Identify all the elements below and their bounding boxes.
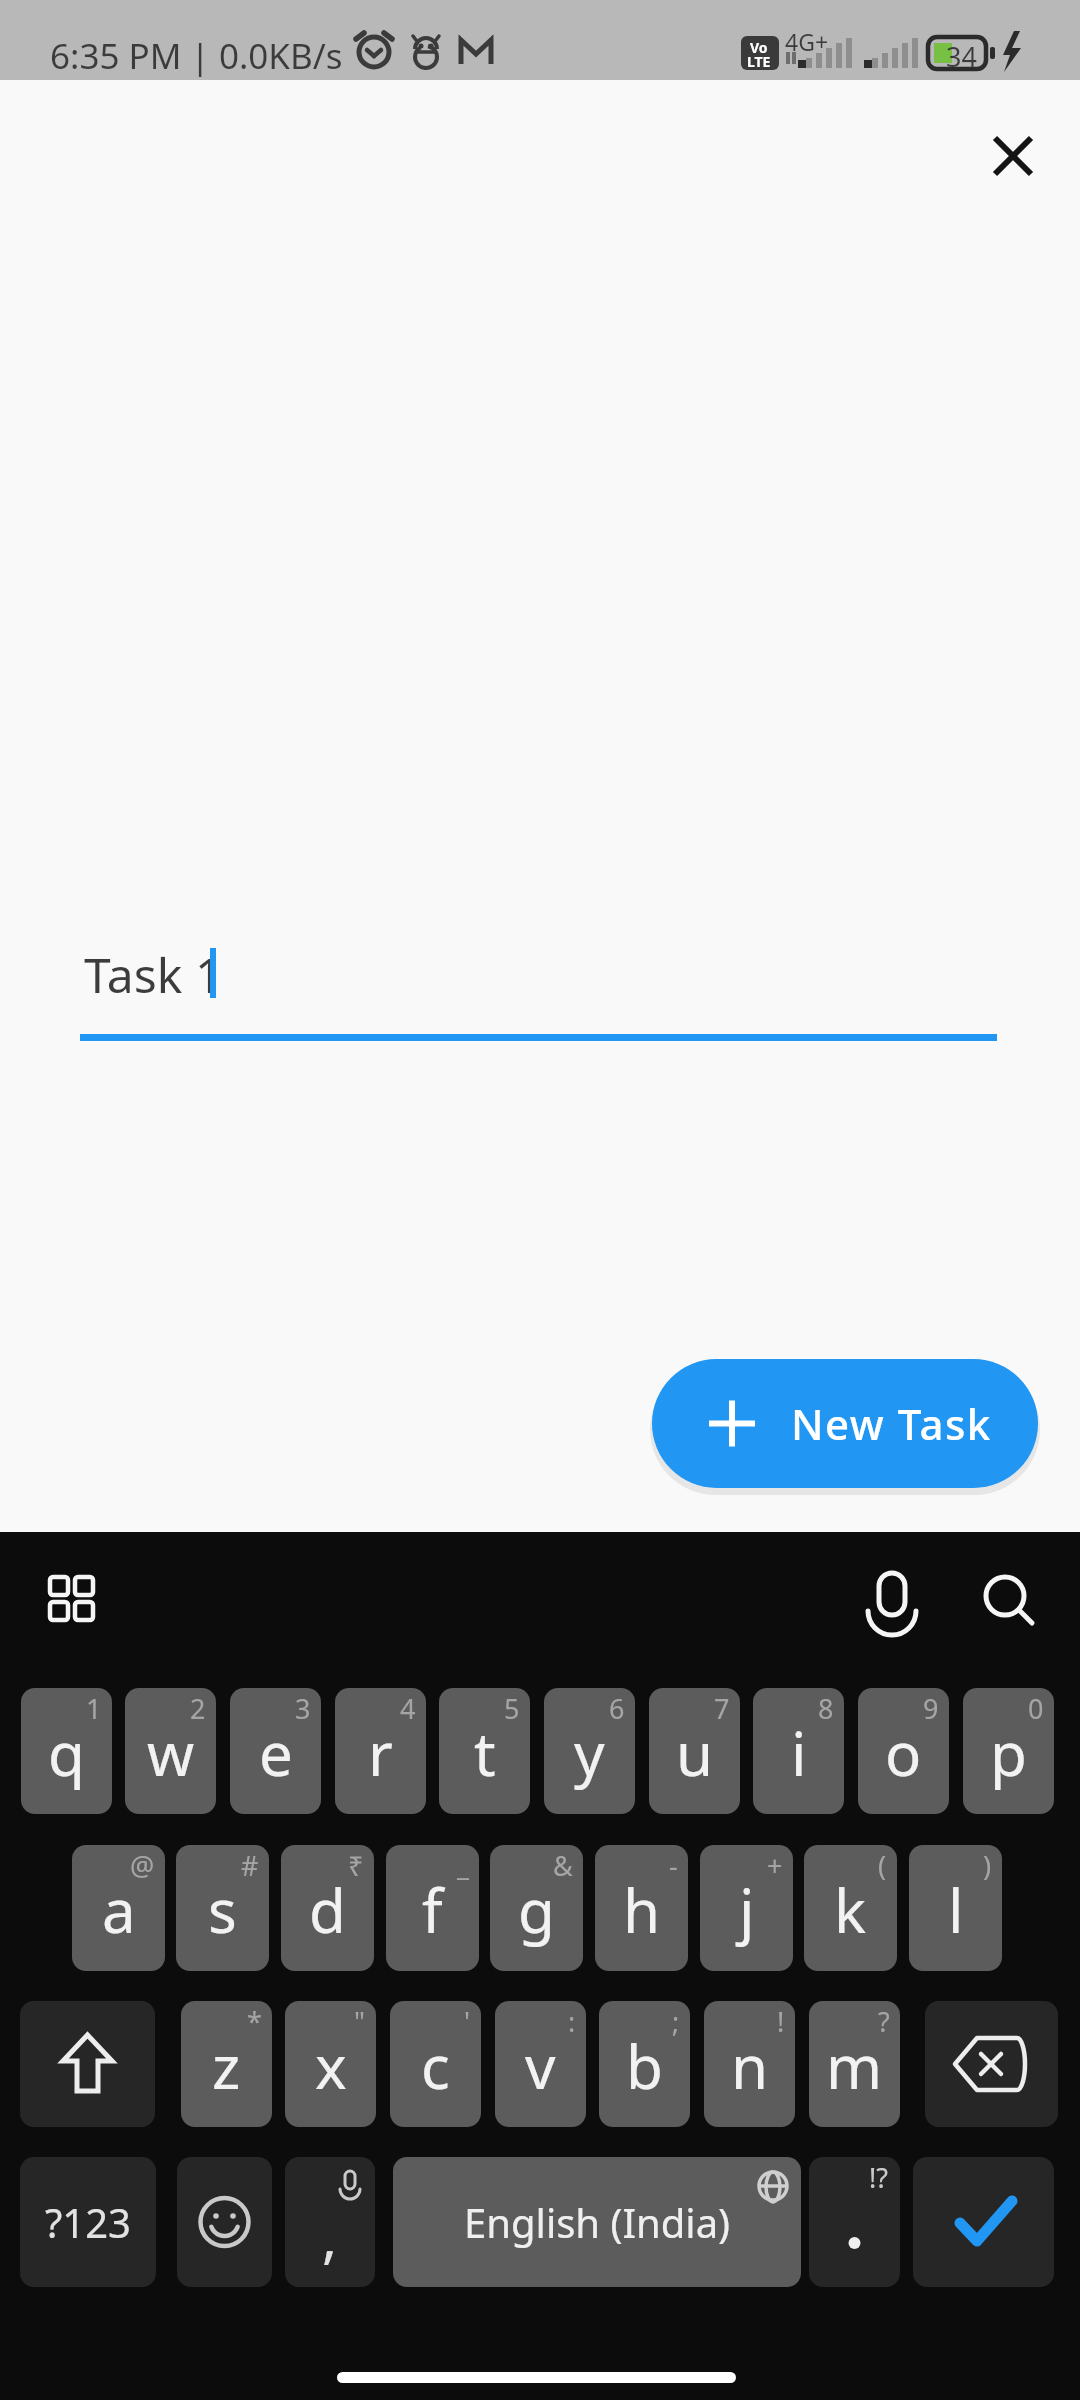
staticText: g [518, 1869, 555, 1951]
staticText: 3 [295, 1690, 311, 1727]
staticText: Task 1 [84, 942, 223, 1007]
staticText: - [669, 1847, 678, 1884]
button[interactable]: 9 [858, 1688, 949, 1814]
staticText: _ [457, 1847, 469, 1884]
button[interactable]: ₹ [281, 1845, 374, 1971]
staticText: s [208, 1869, 237, 1951]
staticText: ' [464, 2003, 471, 2040]
staticText: English (India) [464, 2195, 731, 2249]
staticText: , [322, 2198, 338, 2274]
staticText: m [826, 2025, 883, 2107]
button[interactable]: 5 [439, 1688, 530, 1814]
staticText: z [212, 2025, 241, 2107]
staticText: 9 [923, 1690, 939, 1727]
staticText: n [731, 2025, 769, 2107]
staticText: e [259, 1712, 293, 1794]
button[interactable]: , [285, 2157, 375, 2287]
staticText: t [474, 1712, 496, 1794]
staticText: : [568, 2003, 576, 2040]
staticText: a [102, 1869, 136, 1951]
button[interactable] [177, 2157, 272, 2287]
staticText: & [553, 1847, 573, 1884]
staticText: ; [672, 2003, 680, 2040]
staticText: k [834, 1869, 867, 1951]
button[interactable] [913, 2157, 1054, 2287]
button[interactable]: # [176, 1845, 269, 1971]
staticText: 4G+ [785, 26, 829, 57]
staticText: # [241, 1847, 259, 1884]
button[interactable]: 0 [963, 1688, 1054, 1814]
button[interactable]: 8 [753, 1688, 844, 1814]
staticText: h [623, 1869, 661, 1951]
staticText: 34 [946, 38, 977, 75]
button[interactable]: - [595, 1845, 688, 1971]
staticText: j [739, 1869, 755, 1951]
staticText: !? [869, 2159, 888, 2196]
button[interactable]: !? [809, 2157, 900, 2287]
staticText: ₹ [348, 1847, 364, 1884]
staticText: q [48, 1712, 85, 1794]
staticText: 7 [714, 1690, 730, 1727]
staticText: 5 [504, 1690, 520, 1727]
button[interactable]: ( [804, 1845, 897, 1971]
staticText: ?123 [45, 2195, 131, 2249]
button[interactable]: ? [809, 2001, 900, 2127]
staticText: u [676, 1712, 714, 1794]
staticText: 2 [190, 1690, 206, 1727]
staticText: ( [878, 1847, 887, 1884]
staticText: Vo [750, 38, 768, 57]
staticText: x [315, 2025, 347, 2107]
button[interactable]: English (India) [393, 2157, 801, 2287]
staticText: ! [777, 2003, 785, 2040]
button[interactable] [925, 2001, 1058, 2127]
staticText: r [368, 1712, 393, 1794]
button[interactable] [850, 1557, 935, 1637]
staticText: 8 [818, 1690, 834, 1727]
staticText: d [309, 1869, 346, 1951]
button[interactable]: @ [72, 1845, 165, 1971]
staticText: ? [878, 2003, 890, 2040]
button[interactable]: + [700, 1845, 793, 1971]
button[interactable]: : [495, 2001, 586, 2127]
staticText: y [574, 1712, 605, 1794]
staticText: LTE [747, 52, 771, 71]
button[interactable]: 6 [544, 1688, 635, 1814]
button[interactable]: * [181, 2001, 272, 2127]
button[interactable]: ! [704, 2001, 795, 2127]
staticText: 6:35 PM | 0.0KB/s [50, 32, 343, 80]
staticText: b [626, 2025, 663, 2107]
staticText: 0 [1028, 1690, 1044, 1727]
staticText: 1 [86, 1690, 102, 1727]
staticText: c [421, 2025, 450, 2107]
button[interactable]: 3 [230, 1688, 321, 1814]
staticText: ) [983, 1847, 992, 1884]
button[interactable]: 1 [21, 1688, 112, 1814]
staticText: v [525, 2025, 556, 2107]
button[interactable]: 4 [335, 1688, 426, 1814]
staticText: f [422, 1869, 443, 1951]
staticText: p [990, 1712, 1027, 1794]
staticText: l [948, 1869, 964, 1951]
button[interactable]: New Task [652, 1359, 1038, 1488]
button[interactable]: ) [909, 1845, 1002, 1971]
button[interactable]: _ [386, 1845, 479, 1971]
button[interactable]: " [285, 2001, 376, 2127]
staticText: 4 [400, 1690, 416, 1727]
button[interactable]: 2 [125, 1688, 216, 1814]
button[interactable]: ' [390, 2001, 481, 2127]
staticText: " [354, 2003, 366, 2040]
staticText: * [247, 2003, 262, 2040]
staticText: New Task [791, 1395, 992, 1452]
button[interactable]: 7 [649, 1688, 740, 1814]
button[interactable]: & [490, 1845, 583, 1971]
staticText: + [767, 1847, 783, 1884]
staticText: 6 [609, 1690, 625, 1727]
button[interactable] [983, 127, 1043, 187]
staticText: o [885, 1712, 922, 1794]
button[interactable] [965, 1557, 1050, 1637]
staticText: @ [130, 1847, 155, 1884]
button[interactable]: ?123 [20, 2157, 156, 2287]
button[interactable] [20, 2001, 155, 2127]
button[interactable]: ; [599, 2001, 690, 2127]
button[interactable] [30, 1557, 130, 1637]
